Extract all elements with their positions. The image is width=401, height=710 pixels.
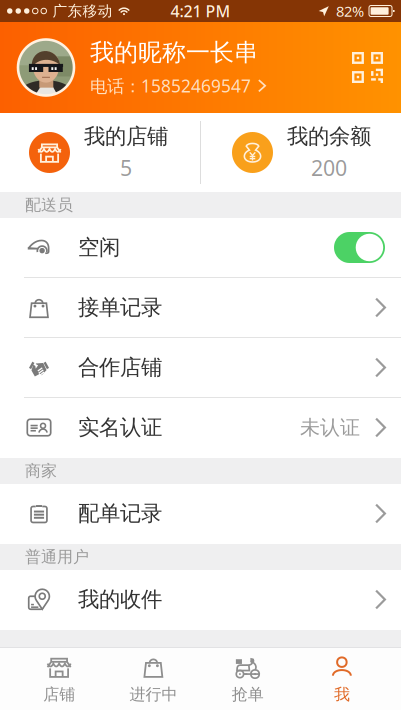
button[interactable]: 我 [295,648,389,710]
staticText: 电话：15852469547 [90,74,251,97]
staticText: 200 [311,153,347,182]
staticText: 抢单 [232,685,264,704]
staticText: 我 [334,685,350,704]
button[interactable]: 配单记录 [0,484,401,544]
staticText: 我的余额 [287,123,371,149]
staticText: 未认证 [300,415,360,440]
button[interactable]: 接单记录 [0,278,401,338]
staticText: 我的昵称一长串 [90,38,258,67]
staticText: 进行中 [129,685,177,704]
staticText: 配单记录 [78,500,162,527]
staticText: 我的收件 [78,586,162,613]
staticText: 接单记录 [78,294,162,321]
staticText: 商家 [25,461,57,481]
button[interactable]: 我的昵称一长串 [0,22,401,113]
staticText: 实名认证 [78,414,162,441]
button[interactable]: 实名认证 [0,398,401,458]
staticText: 合作店铺 [78,354,162,381]
staticText: 我的店铺 [84,123,168,149]
staticText: 店铺 [43,685,75,704]
staticText: 普通用户 [25,547,89,567]
staticText: 82% [336,1,364,21]
staticText: 5 [120,153,132,182]
button[interactable]: 进行中 [106,648,200,710]
staticText: 空闲 [78,234,120,261]
button[interactable]: 抢单 [200,648,295,710]
staticText: 广东移动 [52,2,112,20]
staticText: 4:21 PM [170,0,230,22]
button[interactable]: 我的余额 [232,123,391,182]
button[interactable]: 我的收件 [0,570,401,630]
button[interactable]: 我的店铺 [29,123,200,182]
staticText: 配送员 [25,195,73,215]
button[interactable]: 合作店铺 [0,338,401,398]
button[interactable]: Availability toggle [334,232,385,263]
button[interactable]: 店铺 [12,648,106,710]
